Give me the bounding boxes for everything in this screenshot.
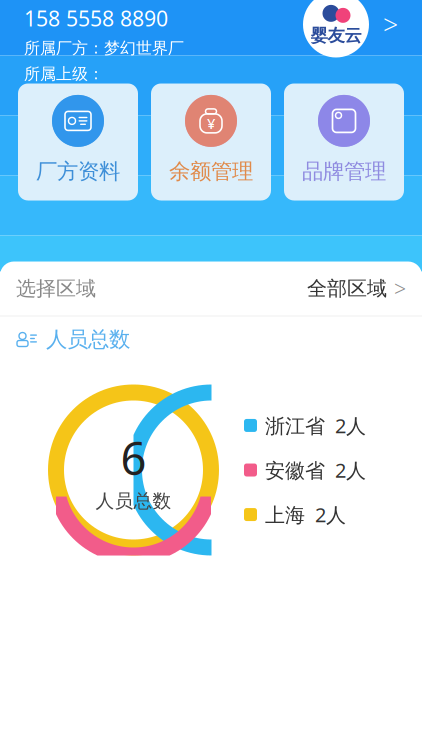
staticText: 婴友云: [310, 25, 361, 46]
button[interactable]: 厂方资料: [18, 83, 138, 200]
button[interactable]: 琳琳: [0, 0, 422, 83]
staticText: 所属厂方：梦幻世界厂: [24, 38, 184, 58]
staticText: 浙江省 2人: [265, 412, 366, 439]
button[interactable]: 品牌管理: [284, 83, 404, 200]
staticText: >: [383, 7, 398, 42]
staticText: 上海 2人: [265, 501, 346, 528]
staticText: 所属上级：: [24, 64, 104, 84]
staticText: 品牌管理: [302, 158, 386, 184]
staticText: 厂方资料: [36, 158, 120, 184]
staticText: 选择区域: [16, 276, 96, 301]
staticText: ¥: [207, 114, 215, 133]
staticText: >: [394, 274, 406, 303]
staticText: 全部区域: [307, 276, 387, 301]
staticText: 人员总数: [46, 326, 130, 353]
staticText: 人员总数: [95, 490, 171, 512]
button[interactable]: ¥: [151, 83, 271, 200]
staticText: 6: [120, 427, 146, 488]
staticText: 安徽省 2人: [265, 457, 366, 483]
staticText: 158 5558 8890: [24, 4, 168, 32]
button[interactable]: 选择区域: [0, 261, 422, 315]
staticText: 余额管理: [169, 158, 253, 184]
